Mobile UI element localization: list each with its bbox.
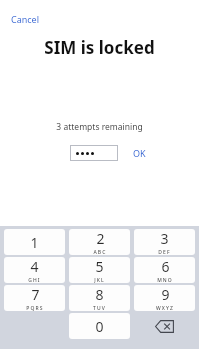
staticText: 5 (95, 257, 104, 276)
staticText: GHI (28, 277, 41, 283)
button[interactable]: 2 (67, 228, 132, 256)
staticText: 1 (30, 233, 39, 252)
staticText: 7 (31, 285, 40, 304)
staticText: JKL (94, 277, 105, 283)
button[interactable]: Backspace (132, 312, 197, 340)
button[interactable]: OK (131, 145, 148, 161)
button[interactable]: 0 (67, 312, 132, 340)
staticText: 9 (161, 285, 170, 304)
button[interactable] (70, 145, 118, 161)
button[interactable]: 7 (2, 284, 67, 312)
staticText: 3 (160, 229, 169, 248)
staticText: WXYZ (156, 305, 174, 311)
staticText: OK (133, 147, 146, 159)
staticText: 0 (95, 317, 104, 336)
button[interactable]: Cancel (8, 11, 43, 27)
staticText: 3 attempts remaining (56, 121, 143, 133)
staticText: MNO (157, 277, 173, 283)
staticText: SIM is locked (44, 36, 155, 59)
staticText: 6 (161, 257, 170, 276)
button[interactable]: 4 (2, 256, 67, 284)
button[interactable]: 3 (132, 228, 197, 256)
button[interactable]: 8 (67, 284, 132, 312)
staticText: 8 (95, 285, 104, 304)
button[interactable]: 1 (2, 228, 67, 256)
staticText: 4 (30, 257, 39, 276)
button[interactable]: 9 (132, 284, 197, 312)
staticText: Cancel (11, 13, 40, 25)
staticText: DEF (158, 249, 171, 255)
button[interactable]: 5 (67, 256, 132, 284)
staticText: PQRS (26, 305, 44, 311)
staticText: ABC (93, 249, 107, 255)
button[interactable]: 6 (132, 256, 197, 284)
staticText: TUV (93, 305, 106, 311)
staticText: 2 (96, 229, 105, 248)
